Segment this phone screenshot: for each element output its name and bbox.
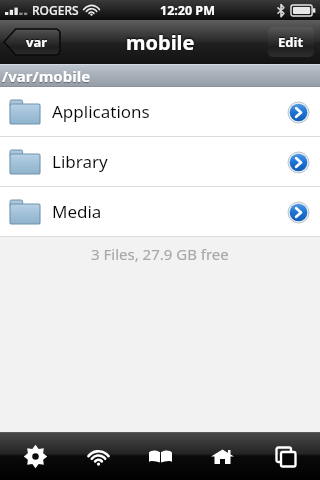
staticText: mobile	[126, 29, 195, 56]
button[interactable]: Open Media	[281, 195, 315, 229]
button[interactable]: Edit	[268, 27, 314, 57]
button[interactable]: Bookmarks	[133, 433, 187, 479]
staticText: 12:20 PM	[160, 2, 215, 19]
button[interactable]: Tabs	[258, 433, 312, 479]
staticText: Edit	[278, 33, 304, 51]
button[interactable]: Applications	[0, 87, 320, 136]
staticText: var	[26, 33, 48, 51]
button[interactable]: Media	[0, 187, 320, 236]
button[interactable]: Network	[71, 433, 125, 479]
staticText: ROGERS	[32, 2, 79, 18]
button[interactable]: Back to var	[4, 27, 60, 57]
staticText: 3 Files, 27.9 GB free	[91, 244, 229, 264]
staticText: Applications	[52, 100, 150, 123]
staticText: Media	[52, 200, 102, 223]
staticText: Library	[52, 150, 108, 173]
staticText: /var/mobile	[2, 66, 91, 86]
button[interactable]: Settings	[8, 433, 62, 479]
button[interactable]: Open Applications	[281, 95, 315, 129]
button[interactable]: Open Library	[281, 145, 315, 179]
button[interactable]: Home	[195, 433, 249, 479]
button[interactable]: Library	[0, 137, 320, 186]
